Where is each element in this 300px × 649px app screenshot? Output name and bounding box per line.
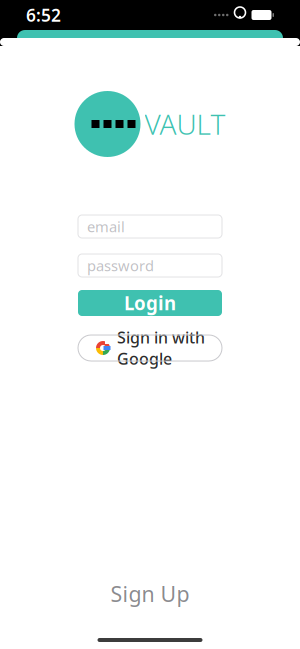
button[interactable]: Login xyxy=(78,290,222,316)
staticText: Login xyxy=(124,291,176,315)
staticText: email xyxy=(87,217,125,236)
staticText: password xyxy=(87,256,154,275)
staticText: Sign Up xyxy=(110,580,189,608)
staticText: VAULT xyxy=(144,105,225,143)
button[interactable]: Sign Up xyxy=(94,574,205,614)
button[interactable]: Sign in with Google xyxy=(78,335,222,361)
staticText: 6:52 xyxy=(26,3,61,26)
staticText: Sign in with Google xyxy=(117,327,205,369)
